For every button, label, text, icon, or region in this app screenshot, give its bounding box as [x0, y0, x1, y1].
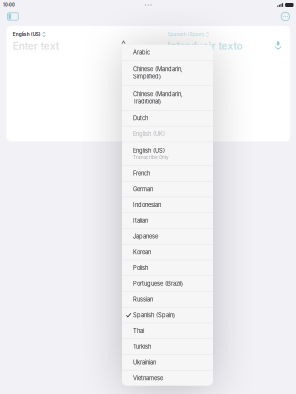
button[interactable]: German [122, 181, 213, 197]
staticText: English (US) [13, 32, 41, 37]
button[interactable]: Indonesian [122, 197, 213, 212]
staticText: English (UK) [133, 131, 165, 137]
staticText: Russian [133, 296, 153, 303]
staticText: Chinese (Mandarin, [133, 66, 183, 72]
staticText: Thai [133, 327, 144, 334]
staticText: Turkish [133, 343, 151, 350]
staticText: Traditional) [133, 98, 161, 105]
button[interactable]: Spanish (Spain) [167, 31, 209, 38]
staticText: Portuguese (Brazil) [133, 280, 183, 287]
button[interactable]: English (US) [122, 142, 213, 165]
button[interactable]: Polish [122, 260, 213, 275]
button[interactable]: Ukrainian [122, 355, 213, 370]
button[interactable]: Vietnamese [122, 370, 213, 386]
button[interactable]: Spanish (Spain) [122, 307, 213, 323]
button[interactable]: Russian [122, 292, 213, 307]
button[interactable]: Chinese (Mandarin, [122, 60, 213, 85]
staticText: 10:00 [3, 2, 15, 7]
staticText: Arabic [133, 49, 150, 56]
button[interactable]: Arabic [122, 45, 213, 60]
button[interactable]: More [280, 11, 291, 22]
staticText: Transcribe Only [133, 155, 169, 160]
button[interactable]: Show Sidebar [6, 11, 20, 22]
staticText: Spanish (Spain) [167, 32, 204, 37]
staticText: Japanese [133, 233, 158, 240]
staticText: Enter text [13, 40, 60, 52]
staticText: Chinese (Mandarin, [133, 91, 183, 98]
button[interactable]: Portuguese (Brazil) [122, 276, 213, 291]
staticText: Korean [133, 249, 151, 255]
button[interactable]: French [122, 166, 213, 181]
staticText: Ukrainian [133, 359, 156, 366]
staticText: Polish [133, 264, 148, 271]
button[interactable]: Dictate [273, 38, 283, 51]
staticText: French [133, 170, 150, 177]
staticText: Italian [133, 217, 148, 224]
staticText: Vietnamese [133, 375, 163, 381]
button[interactable]: Japanese [122, 229, 213, 244]
button[interactable]: Italian [122, 213, 213, 228]
button[interactable]: English (US) [13, 31, 45, 38]
staticText: Introducir texto [167, 40, 242, 52]
button[interactable]: Turkish [122, 339, 213, 354]
staticText: Indonesian [133, 201, 161, 208]
staticText: Dutch [133, 115, 148, 122]
button[interactable]: Chinese (Mandarin, [122, 86, 213, 110]
button[interactable]: Thai [122, 323, 213, 338]
button[interactable]: Dutch [122, 111, 213, 126]
staticText: Spanish (Spain) [133, 312, 175, 318]
staticText: Simplified) [133, 73, 161, 80]
button[interactable]: English (UK) [122, 126, 213, 142]
button[interactable]: Korean [122, 244, 213, 260]
staticText: German [133, 186, 153, 192]
staticText: English (US) [133, 147, 165, 154]
